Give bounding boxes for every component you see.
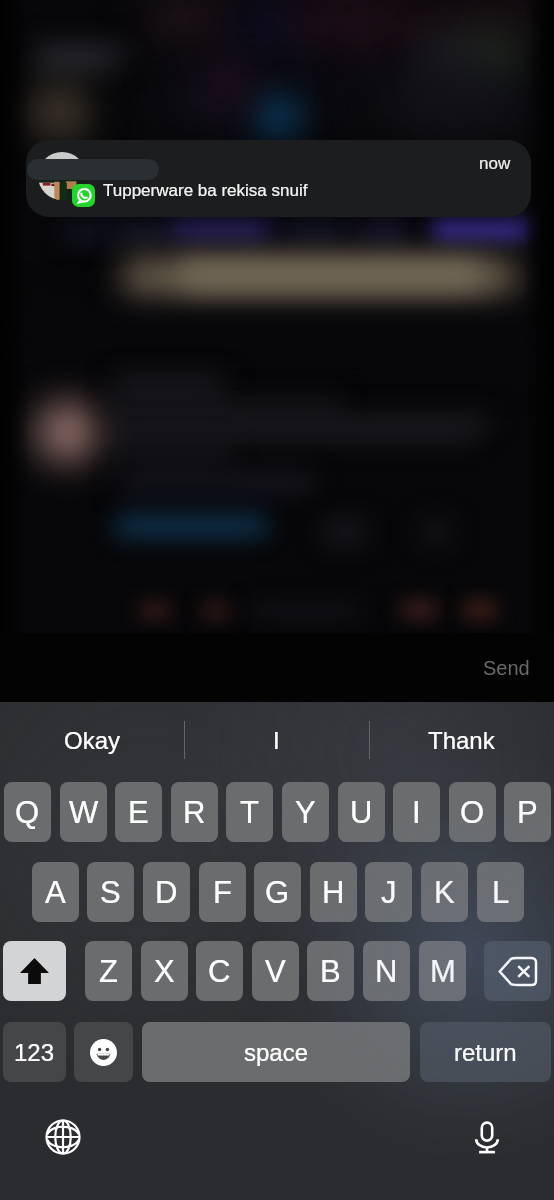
staticText: F [213,875,232,910]
button[interactable]: Z [85,941,132,1001]
button[interactable]: A [32,862,79,922]
button[interactable]: Q [4,782,51,842]
staticText: A [45,875,66,910]
staticText: I [412,795,421,830]
staticText: V [265,954,286,989]
button[interactable]: W [60,782,107,842]
staticText: U [350,795,373,830]
button[interactable]: K [421,862,468,922]
staticText: N [375,954,398,989]
staticText: O [460,795,485,830]
button[interactable]: Okay [0,702,184,778]
button[interactable]: G [254,862,301,922]
button[interactable]: now [26,140,531,217]
staticText: J [381,875,397,910]
staticText: R [183,795,206,830]
staticText: now [479,154,511,173]
button[interactable]: L [477,862,524,922]
staticText: B [320,954,341,989]
button[interactable]: D [143,862,190,922]
button[interactable]: Shift [3,941,66,1001]
button[interactable]: B [307,941,354,1001]
staticText: Y [295,795,316,830]
staticText: M [430,954,456,989]
staticText: D [155,875,178,910]
staticText: E [128,795,149,830]
staticText: C [208,954,231,989]
staticText: T [240,795,259,830]
button[interactable]: I [393,782,440,842]
staticText: P [517,795,538,830]
button[interactable]: 123 [3,1022,66,1082]
button[interactable]: F [199,862,246,922]
staticText: Z [99,954,118,989]
button[interactable]: J [365,862,412,922]
staticText: space [244,1039,309,1066]
staticText: G [265,875,290,910]
staticText: Okay [64,727,121,754]
staticText: Send [483,657,530,679]
button[interactable]: V [252,941,299,1001]
button[interactable]: Next keyboard [39,1113,87,1161]
button[interactable]: Backspace [484,941,551,1001]
button[interactable]: O [449,782,496,842]
staticText: return [454,1039,517,1066]
button[interactable]: I [184,702,369,778]
button[interactable]: return [420,1022,551,1082]
button[interactable]: Y [282,782,329,842]
staticText: W [69,795,99,830]
button[interactable]: U [338,782,385,842]
button[interactable]: X [141,941,188,1001]
button[interactable]: Thank [369,702,554,778]
staticText: 123 [14,1039,55,1066]
staticText: Q [15,795,40,830]
button[interactable]: M [419,941,466,1001]
button[interactable]: space [142,1022,410,1082]
button[interactable]: T [226,782,273,842]
staticText: I [273,727,280,754]
button[interactable]: R [171,782,218,842]
staticText: X [154,954,175,989]
staticText: S [100,875,121,910]
button[interactable]: C [196,941,243,1001]
staticText: Thank [428,727,495,754]
button[interactable]: P [504,782,551,842]
staticText: L [492,875,510,910]
button[interactable]: H [310,862,357,922]
button[interactable]: Emoji [74,1022,133,1082]
staticText: H [322,875,345,910]
button[interactable]: E [115,782,162,842]
staticText: Tupperware ba rekisa snuif [103,181,308,200]
button[interactable]: Send [0,633,554,702]
button[interactable]: S [87,862,134,922]
button[interactable]: Dictation [463,1113,511,1161]
button[interactable]: N [363,941,410,1001]
staticText: K [434,875,455,910]
